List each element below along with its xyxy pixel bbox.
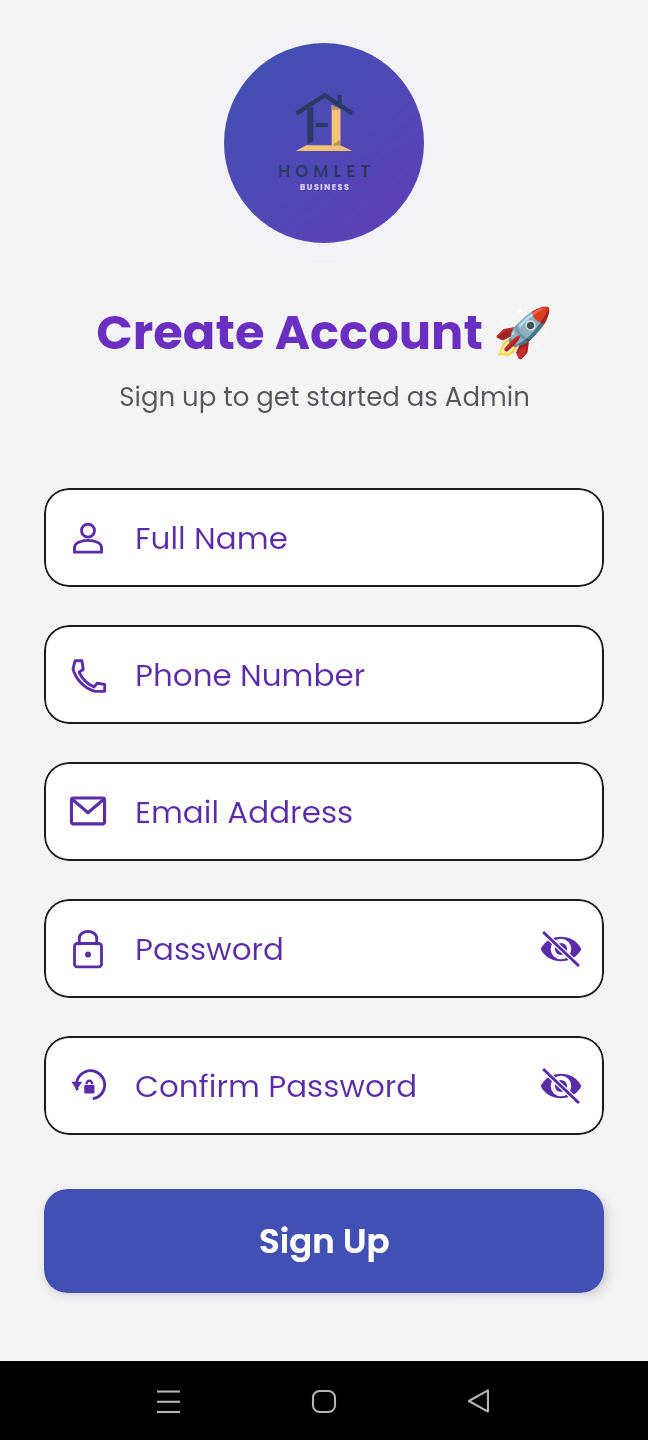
- staticText: Sign up to get started as Admin: [119, 379, 530, 415]
- button[interactable]: Back: [448, 1371, 508, 1431]
- button[interactable]: Toggle password visibility: [534, 922, 588, 976]
- button[interactable]: Home: [294, 1371, 354, 1431]
- button[interactable]: Email Address: [44, 762, 604, 861]
- button[interactable]: Password: [44, 899, 604, 998]
- staticText: Full Name: [135, 516, 288, 559]
- staticText: Confirm Password: [135, 1064, 418, 1107]
- staticText: HOMLET: [278, 159, 375, 183]
- button[interactable]: Phone Number: [44, 625, 604, 724]
- staticText: Phone Number: [135, 653, 366, 696]
- staticText: Create Account 🚀: [96, 299, 553, 366]
- staticText: Email Address: [135, 790, 354, 833]
- button[interactable]: Full Name: [44, 488, 604, 587]
- button[interactable]: Toggle password visibility: [534, 1059, 588, 1113]
- button[interactable]: Confirm Password: [44, 1036, 604, 1135]
- button[interactable]: Sign Up: [44, 1189, 604, 1293]
- staticText: Sign Up: [259, 1217, 390, 1265]
- staticText: Password: [135, 927, 285, 970]
- button[interactable]: Recent apps: [138, 1371, 198, 1431]
- staticText: BUSINESS: [300, 182, 351, 193]
